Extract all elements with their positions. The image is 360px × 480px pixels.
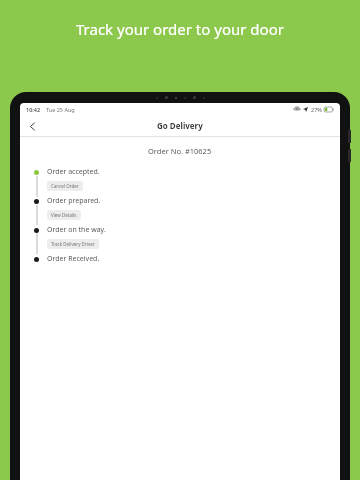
- button[interactable]: Track Delivery Driver: [47, 239, 99, 249]
- staticText: Go Delivery: [157, 120, 203, 131]
- staticText: Order prepared.: [47, 196, 101, 206]
- staticText: Order on the way.: [47, 225, 106, 235]
- staticText: 10:42: [26, 106, 41, 113]
- staticText: Track your order to your door: [76, 19, 284, 39]
- button[interactable]: Cancel Order: [47, 181, 83, 191]
- staticText: Order No. #10625: [148, 146, 212, 156]
- button[interactable]: Back: [24, 118, 40, 134]
- staticText: 27%: [311, 106, 322, 113]
- button[interactable]: View Details: [47, 210, 81, 220]
- staticText: View Details: [51, 212, 77, 218]
- staticText: Track Delivery Driver: [51, 241, 95, 247]
- staticText: Tue 25 Aug: [46, 106, 75, 113]
- staticText: Order Received.: [47, 254, 100, 264]
- staticText: Order accepted.: [47, 167, 100, 177]
- staticText: Cancel Order: [51, 183, 79, 189]
